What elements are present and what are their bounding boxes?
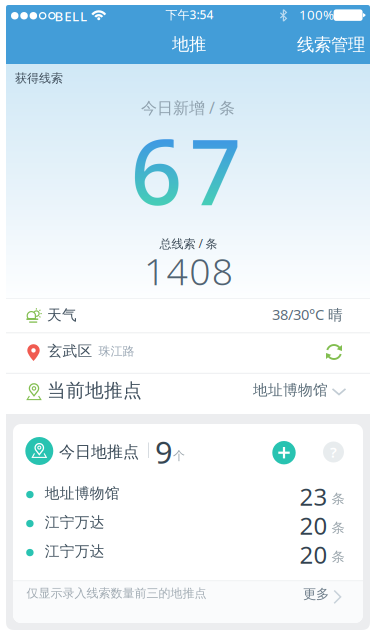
- staticText: 9: [155, 431, 173, 472]
- staticText: 条: [332, 491, 345, 507]
- staticText: 地推: [172, 33, 206, 55]
- staticText: 20: [300, 510, 328, 541]
- button[interactable]: 地址博物馆: [13, 482, 363, 511]
- staticText: 38/30°C 晴: [272, 304, 343, 324]
- button[interactable]: 线索管理: [297, 34, 365, 55]
- staticText: 江宁万达: [45, 513, 105, 531]
- staticText: 更多: [303, 586, 329, 602]
- staticText: 个: [173, 448, 185, 463]
- staticText: 仅显示录入线索数量前三的地推点: [26, 586, 206, 601]
- staticText: 当前地推点: [47, 379, 142, 402]
- button[interactable]: 刷新定位: [325, 344, 343, 360]
- staticText: BELL: [54, 7, 87, 25]
- button[interactable]: 新增地推点: [272, 441, 296, 464]
- staticText: 江宁万达: [45, 542, 105, 560]
- button[interactable]: 帮助: [323, 441, 344, 462]
- staticText: 线索管理: [297, 34, 365, 55]
- button[interactable]: 江宁万达: [13, 540, 363, 569]
- staticText: 条: [332, 520, 345, 536]
- staticText: 获得线索: [15, 71, 63, 86]
- staticText: 条: [332, 549, 345, 565]
- staticText: 今日新增 / 条: [141, 97, 235, 118]
- staticText: 今日地推点: [59, 442, 139, 462]
- staticText: 珠江路: [98, 344, 134, 359]
- staticText: ?: [330, 442, 337, 462]
- button[interactable]: 当前地推点: [6, 374, 370, 414]
- staticText: 20: [300, 539, 328, 570]
- button[interactable]: 江宁万达: [13, 511, 363, 540]
- staticText: 1408: [144, 246, 233, 296]
- staticText: 地址博物馆: [45, 484, 120, 502]
- staticText: 100%: [299, 6, 334, 23]
- button[interactable]: 更多: [303, 583, 342, 604]
- staticText: 23: [300, 481, 328, 512]
- staticText: 地址博物馆: [253, 381, 328, 399]
- staticText: 玄武区: [47, 342, 92, 360]
- staticText: 下午3:54: [165, 7, 213, 22]
- staticText: 总线索 / 条: [159, 235, 217, 251]
- staticText: 天气: [47, 306, 77, 324]
